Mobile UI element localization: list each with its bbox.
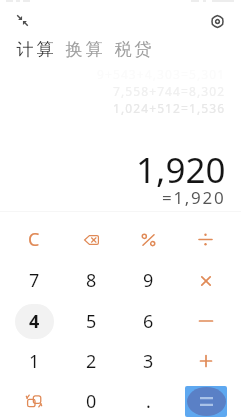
button[interactable]: Equals	[177, 381, 234, 420]
button[interactable]: 3	[120, 341, 177, 381]
button[interactable]: Percent	[120, 219, 177, 260]
staticText: 1,024+512=1,536	[113, 100, 226, 116]
button[interactable]: 计算	[13, 36, 57, 63]
staticText: 8	[86, 268, 97, 293]
button[interactable]: Settings	[206, 10, 228, 32]
button[interactable]: 2	[63, 341, 120, 381]
staticText: .	[146, 389, 151, 414]
staticText: 税贷	[113, 39, 153, 60]
button[interactable]: Collapse	[12, 10, 33, 31]
staticText: 3	[143, 349, 154, 374]
staticText: 换算	[64, 39, 104, 60]
staticText: =1,920	[162, 186, 226, 209]
button[interactable]: Convert	[5, 381, 63, 420]
staticText: C	[28, 227, 40, 252]
button[interactable]: 7	[5, 260, 63, 301]
button[interactable]: Minus	[177, 301, 234, 341]
button[interactable]: 4	[5, 301, 63, 341]
staticText: 5	[86, 309, 97, 334]
staticText: 4	[29, 309, 40, 334]
staticText: 7,558+744=8,302	[113, 83, 226, 99]
staticText: 1,920	[136, 146, 226, 194]
button[interactable]: Multiply	[177, 260, 234, 301]
staticText: 0	[86, 389, 97, 414]
button[interactable]: 8	[63, 260, 120, 301]
staticText: 7	[29, 268, 40, 293]
button[interactable]: 1	[5, 341, 63, 381]
button[interactable]: Plus	[177, 341, 234, 381]
button[interactable]: .	[120, 381, 177, 420]
staticText: 6	[143, 309, 154, 334]
button[interactable]: 0	[63, 381, 120, 420]
staticText: 9	[143, 268, 154, 293]
button[interactable]: Divide	[177, 219, 234, 260]
staticText: 1	[29, 349, 40, 374]
button[interactable]: Backspace	[63, 219, 120, 260]
button[interactable]: 换算	[62, 36, 106, 63]
button[interactable]: 9	[120, 260, 177, 301]
staticText: 计算	[15, 39, 55, 60]
staticText: 2	[86, 349, 97, 374]
button[interactable]: 5	[63, 301, 120, 341]
button[interactable]: C	[5, 219, 63, 260]
button[interactable]: 税贷	[111, 36, 155, 63]
button[interactable]: 6	[120, 301, 177, 341]
